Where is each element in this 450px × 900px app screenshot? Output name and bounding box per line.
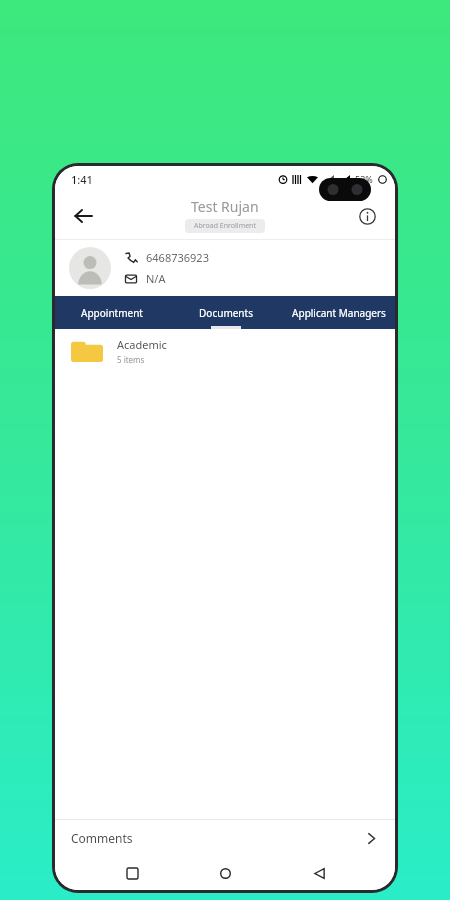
button[interactable]: Applicant Managers [282, 296, 395, 329]
button[interactable]: Comments [55, 820, 395, 856]
button[interactable]: Appointment [55, 296, 169, 329]
staticText: Test Rujan [191, 197, 259, 216]
button[interactable]: Recents [115, 856, 149, 890]
button[interactable]: Back [302, 856, 336, 890]
staticText: N/A [146, 271, 166, 286]
staticText: 6468736923 [146, 250, 209, 265]
staticText: Comments [71, 830, 133, 846]
button[interactable]: Back [63, 196, 103, 236]
staticText: 53% [355, 173, 373, 185]
staticText: Documents [199, 306, 253, 320]
staticText: Academic [117, 337, 167, 352]
button[interactable]: Home [208, 856, 242, 890]
button[interactable]: Documents [169, 296, 282, 329]
button[interactable]: Academic [55, 329, 395, 373]
button[interactable]: Info [349, 198, 385, 234]
staticText: 1:41 [71, 172, 93, 187]
staticText: Applicant Managers [292, 306, 386, 320]
staticText: 5 items [117, 354, 145, 365]
staticText: Appointment [81, 306, 143, 320]
staticText: Abroad Enrollment [194, 221, 256, 231]
